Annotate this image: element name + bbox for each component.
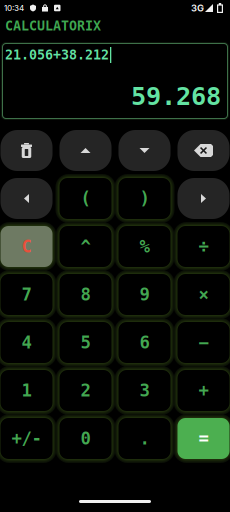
staticText: = (198, 428, 208, 449)
button[interactable]: ÷ (177, 226, 229, 267)
button[interactable]: 2 (59, 370, 111, 411)
button[interactable]: C (0, 226, 52, 267)
staticText: . (139, 428, 149, 449)
staticText: 7 (21, 284, 31, 305)
button[interactable]: = (177, 418, 229, 459)
button[interactable]: − (177, 322, 229, 363)
button[interactable]: . (118, 418, 170, 459)
button[interactable]: 9 (118, 274, 170, 315)
button[interactable]: 0 (59, 418, 111, 459)
staticText: 10:34 (4, 3, 24, 13)
button[interactable]: ( (59, 178, 111, 219)
staticText: 8 (80, 284, 90, 305)
button[interactable]: Move left (0, 178, 52, 219)
button[interactable]: % (118, 226, 170, 267)
staticText: + (198, 380, 208, 401)
staticText: − (198, 332, 208, 353)
staticText: ^ (80, 236, 90, 257)
button[interactable]: +/- (0, 418, 52, 459)
staticText: 3G (191, 2, 204, 14)
staticText: 2 (80, 380, 90, 401)
button[interactable]: 1 (0, 370, 52, 411)
button[interactable]: ) (118, 178, 170, 219)
button[interactable]: ^ (59, 226, 111, 267)
staticText: 9 (139, 284, 149, 305)
staticText: 3 (139, 380, 149, 401)
staticText: ( (80, 188, 90, 209)
button[interactable]: 6 (118, 322, 170, 363)
staticText: % (139, 236, 149, 257)
button[interactable]: 8 (59, 274, 111, 315)
staticText: 1 (21, 380, 31, 401)
button[interactable]: × (177, 274, 229, 315)
button[interactable]: Clear all (0, 130, 52, 171)
staticText: 0 (80, 428, 90, 449)
button[interactable]: Previous (59, 130, 111, 171)
staticText: 21.056+38.212 (5, 47, 109, 63)
button[interactable]: Next (118, 130, 170, 171)
button[interactable]: Backspace (177, 130, 229, 171)
staticText: C (21, 236, 31, 257)
staticText: 5 (80, 332, 90, 353)
button[interactable]: 4 (0, 322, 52, 363)
staticText: ÷ (198, 236, 208, 257)
button[interactable]: 5 (59, 322, 111, 363)
button[interactable]: Move right (177, 178, 229, 219)
button[interactable]: + (177, 370, 229, 411)
staticText: 6 (139, 332, 149, 353)
staticText: × (198, 284, 208, 305)
staticText: CALCULATORIX (5, 18, 101, 34)
staticText: 59.268 (131, 81, 221, 111)
staticText: ) (139, 188, 149, 209)
staticText: +/- (11, 428, 41, 449)
staticText: 4 (21, 332, 31, 353)
button[interactable]: 7 (0, 274, 52, 315)
button[interactable]: 3 (118, 370, 170, 411)
